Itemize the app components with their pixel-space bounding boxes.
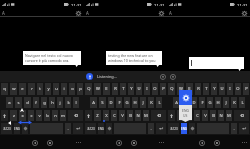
- button[interactable]: ENG: [179, 105, 192, 120]
- button[interactable]: Home: [45, 138, 54, 147]
- button[interactable]: Backspace: [68, 110, 83, 121]
- button[interactable]: J: [223, 97, 229, 108]
- button[interactable]: f: [33, 97, 39, 108]
- button[interactable]: &123: [85, 123, 96, 134]
- button[interactable]: H: [215, 97, 221, 108]
- button[interactable]: i: [61, 83, 67, 95]
- button[interactable]: w: [10, 83, 17, 95]
- button[interactable]: .: [231, 123, 237, 134]
- button[interactable]: Backspace: [234, 110, 249, 121]
- button[interactable]: Back: [30, 138, 39, 147]
- button[interactable]: Home: [129, 138, 138, 147]
- button[interactable]: K: [231, 97, 237, 108]
- button[interactable]: e: [19, 83, 26, 95]
- button[interactable]: Q: [168, 83, 175, 95]
- button[interactable]: W: [177, 83, 184, 95]
- button[interactable]: Q: [85, 83, 92, 95]
- button[interactable]: B: [210, 110, 216, 121]
- button[interactable]: Enter: [73, 123, 83, 134]
- button[interactable]: V: [119, 110, 125, 121]
- button[interactable]: Z: [177, 110, 184, 121]
- button[interactable]: ENG: [98, 123, 104, 134]
- button[interactable]: W: [94, 83, 101, 95]
- button[interactable]: More: [159, 142, 164, 143]
- button[interactable]: Microphone: [86, 73, 93, 80]
- button[interactable]: R: [195, 83, 201, 95]
- button[interactable]: G: [124, 97, 130, 108]
- button[interactable]: F: [199, 97, 205, 108]
- button[interactable]: t: [37, 83, 43, 95]
- button[interactable]: O: [152, 83, 158, 95]
- button[interactable]: E: [186, 83, 193, 95]
- button[interactable]: F: [116, 97, 122, 108]
- button[interactable]: C: [111, 110, 117, 121]
- button[interactable]: A: [173, 97, 180, 108]
- button[interactable]: Settings: [158, 10, 165, 17]
- button[interactable]: s: [15, 97, 22, 108]
- button[interactable]: X: [186, 110, 192, 121]
- button[interactable]: D: [191, 97, 197, 108]
- button[interactable]: Shift: [85, 110, 92, 121]
- button[interactable]: N: [135, 110, 141, 121]
- button[interactable]: p: [77, 83, 83, 95]
- button[interactable]: I: [227, 83, 233, 95]
- button[interactable]: P: [243, 83, 249, 95]
- button[interactable]: More: [242, 142, 247, 143]
- button[interactable]: Keyboard settings: [179, 90, 192, 105]
- button[interactable]: A: [90, 97, 97, 108]
- button[interactable]: O: [235, 83, 241, 95]
- button[interactable]: n: [52, 110, 58, 121]
- button[interactable]: I: [144, 83, 150, 95]
- button[interactable]: &123: [1, 123, 12, 134]
- button[interactable]: g: [41, 97, 47, 108]
- button[interactable]: o: [69, 83, 75, 95]
- button[interactable]: l: [73, 97, 79, 108]
- button[interactable]: N: [218, 110, 224, 121]
- button[interactable]: h: [49, 97, 55, 108]
- button[interactable]: k: [65, 97, 71, 108]
- button[interactable]: Back: [197, 138, 206, 147]
- button[interactable]: [30, 123, 63, 134]
- button[interactable]: L: [156, 97, 162, 108]
- button[interactable]: Shift: [1, 110, 8, 121]
- button[interactable]: j: [57, 97, 63, 108]
- button[interactable]: S: [182, 97, 189, 108]
- button[interactable]: Voice input: [169, 73, 176, 80]
- button[interactable]: c: [28, 110, 34, 121]
- button[interactable]: Z: [94, 110, 101, 121]
- button[interactable]: z: [10, 110, 17, 121]
- button[interactable]: v: [36, 110, 42, 121]
- button[interactable]: Change language: [22, 123, 28, 134]
- button[interactable]: ENG: [181, 123, 187, 134]
- button[interactable]: P: [160, 83, 166, 95]
- button[interactable]: M: [226, 110, 232, 121]
- button[interactable]: Y: [211, 83, 217, 95]
- button[interactable]: H: [132, 97, 138, 108]
- button[interactable]: Home: [212, 138, 221, 147]
- button[interactable]: V: [202, 110, 208, 121]
- button[interactable]: Change language: [189, 123, 195, 134]
- button[interactable]: Voice input: [159, 73, 166, 80]
- button[interactable]: Change language: [106, 123, 112, 134]
- button[interactable]: G: [207, 97, 213, 108]
- button[interactable]: K: [148, 97, 154, 108]
- button[interactable]: Back: [114, 138, 123, 147]
- button[interactable]: Enter: [239, 123, 249, 134]
- button[interactable]: Settings: [75, 10, 82, 17]
- button[interactable]: m: [60, 110, 66, 121]
- button[interactable]: r: [28, 83, 35, 95]
- button[interactable]: ENG: [14, 123, 20, 134]
- button[interactable]: a: [6, 97, 13, 108]
- button[interactable]: L: [239, 97, 245, 108]
- button[interactable]: T: [203, 83, 209, 95]
- button[interactable]: Y: [128, 83, 134, 95]
- button[interactable]: D: [108, 97, 114, 108]
- button[interactable]: T: [120, 83, 126, 95]
- button[interactable]: u: [53, 83, 59, 95]
- button[interactable]: X: [103, 110, 109, 121]
- button[interactable]: S: [99, 97, 106, 108]
- button[interactable]: Settings: [241, 10, 248, 17]
- button[interactable]: B: [127, 110, 133, 121]
